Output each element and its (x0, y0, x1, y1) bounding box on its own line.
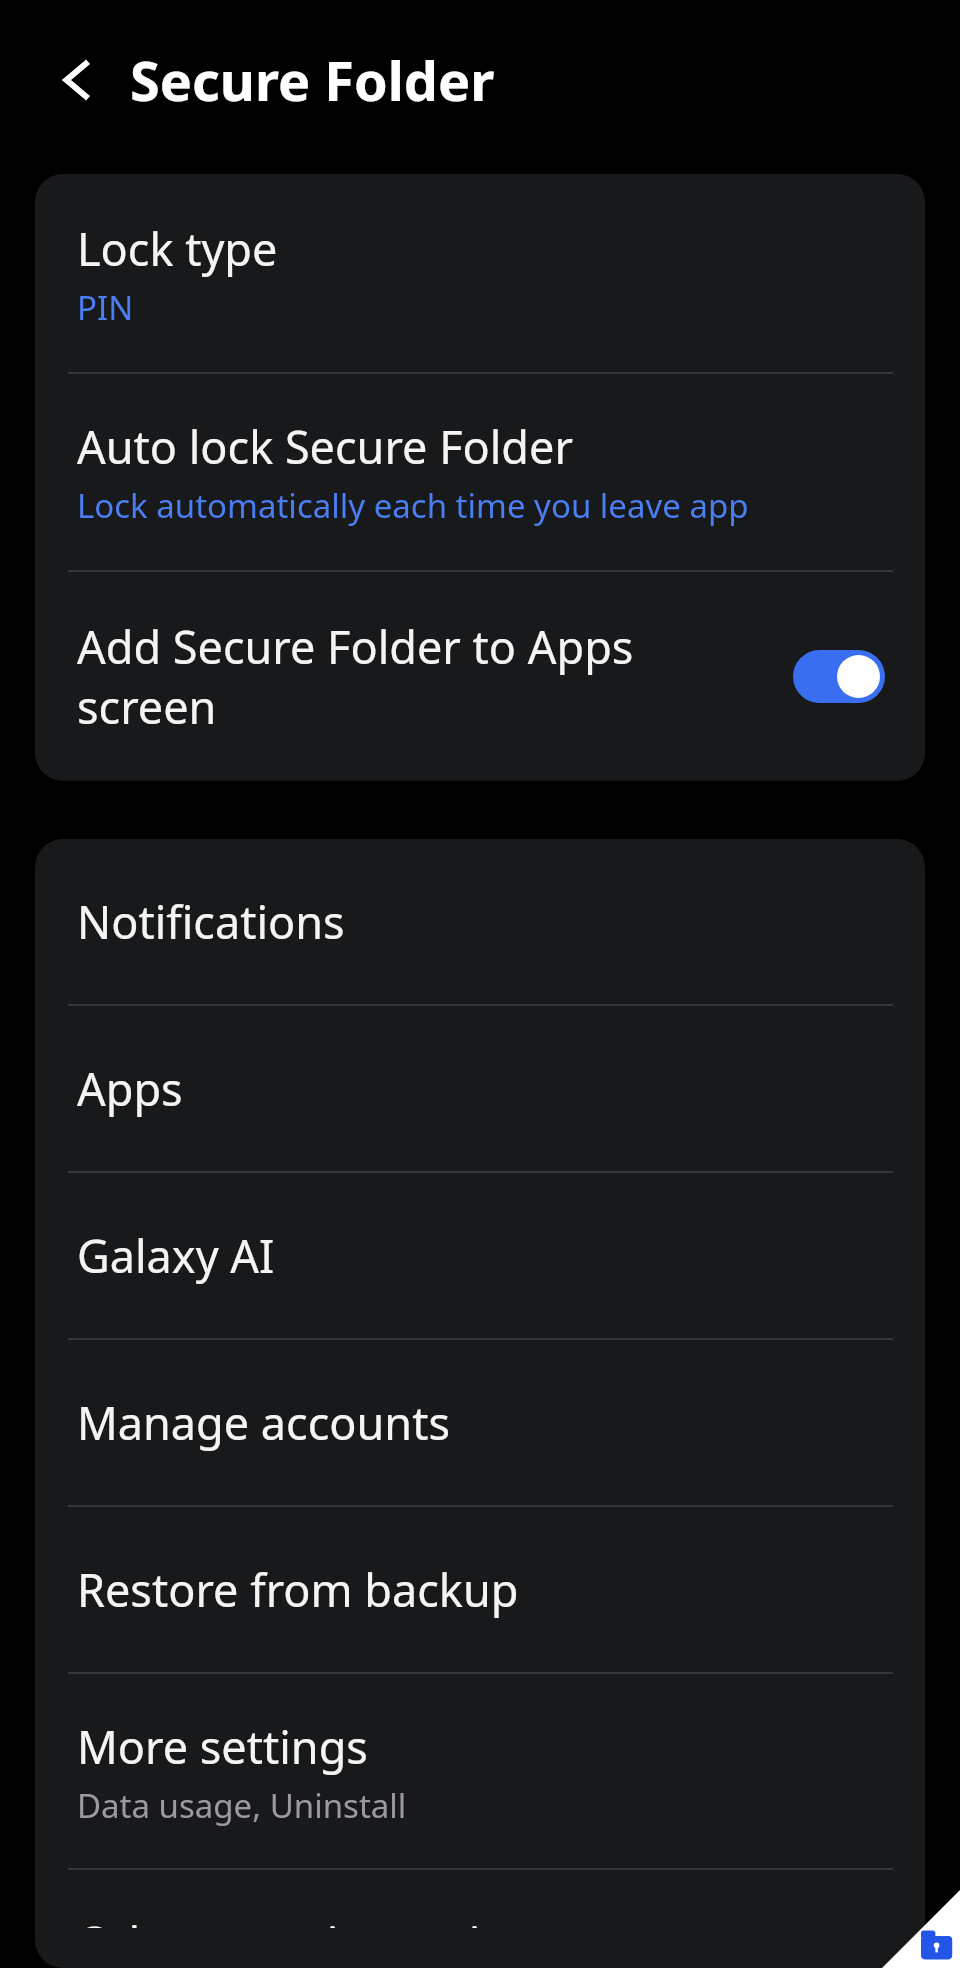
button[interactable]: Add Secure Folder to Apps screen (35, 572, 925, 781)
button[interactable]: Apps (35, 1006, 925, 1171)
staticText: Notifications (77, 891, 345, 952)
button[interactable]: Restore from backup (35, 1507, 925, 1672)
staticText: Add Secure Folder to Apps screen (77, 616, 773, 737)
staticText: Galaxy AI (77, 1225, 275, 1286)
staticText: Lock automatically each time you leave a… (77, 483, 749, 528)
button[interactable]: More settings (35, 1674, 925, 1868)
button[interactable]: Lock type (35, 174, 925, 372)
button[interactable]: Galaxy AI (35, 1173, 925, 1338)
staticText: More settings (77, 1716, 368, 1777)
button[interactable]: Manage accounts (35, 1340, 925, 1505)
staticText: Auto lock Secure Folder (77, 416, 573, 477)
staticText: Restore from backup (77, 1559, 519, 1620)
staticText: Apps (77, 1058, 183, 1119)
staticText: Other security settings (77, 1912, 558, 1928)
staticText: Lock type (77, 218, 278, 279)
button[interactable]: Back (42, 45, 112, 115)
staticText: Manage accounts (77, 1392, 450, 1453)
button[interactable]: Other security settings (35, 1870, 925, 1968)
button[interactable]: Notifications (35, 839, 925, 1004)
button[interactable]: Add Secure Folder to Apps screen toggle,… (793, 650, 885, 703)
staticText: PIN (77, 285, 134, 330)
staticText: Data usage, Uninstall (77, 1783, 407, 1828)
staticText: Secure Folder (130, 43, 495, 117)
button[interactable]: Auto lock Secure Folder (35, 374, 925, 570)
